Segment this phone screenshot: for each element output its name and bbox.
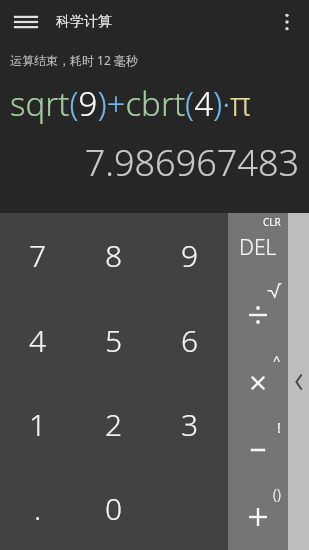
staticText: sqrt(9)+cbrt(4)·π bbox=[10, 81, 299, 126]
button[interactable]: . bbox=[0, 466, 76, 550]
staticText: 6 bbox=[181, 320, 199, 361]
staticText: 3 bbox=[181, 404, 199, 445]
button[interactable]: 1 bbox=[0, 382, 76, 466]
staticText: 4 bbox=[29, 320, 47, 361]
staticText: 0 bbox=[105, 488, 123, 529]
staticText: 2 bbox=[105, 404, 123, 445]
button[interactable]: 2 bbox=[76, 382, 152, 466]
button[interactable]: Subtract bbox=[228, 416, 288, 483]
button[interactable]: 3 bbox=[152, 382, 228, 466]
staticText: 8 bbox=[105, 235, 123, 276]
staticText: 1 bbox=[29, 404, 47, 445]
button[interactable]: 0 bbox=[76, 466, 152, 550]
button[interactable]: 5 bbox=[76, 298, 152, 382]
staticText: 科学计算 bbox=[56, 13, 112, 31]
staticText: CLR bbox=[263, 215, 281, 229]
staticText: . bbox=[34, 488, 42, 529]
staticText: ^ bbox=[273, 351, 281, 369]
button[interactable]: 7 bbox=[0, 213, 76, 298]
staticText: 9 bbox=[181, 235, 199, 276]
button[interactable]: Divide bbox=[228, 281, 288, 349]
button[interactable]: Multiply bbox=[228, 349, 288, 416]
button[interactable]: Menu bbox=[8, 4, 44, 40]
button[interactable]: Delete, long press to clear bbox=[228, 213, 288, 281]
button[interactable]: More options bbox=[269, 4, 305, 40]
staticText: () bbox=[273, 485, 281, 504]
button[interactable]: 6 bbox=[152, 298, 228, 382]
staticText: 运算结束，耗时 12 毫秒 bbox=[10, 52, 138, 68]
button[interactable]: 9 bbox=[152, 213, 228, 298]
staticText: 5 bbox=[105, 320, 123, 361]
button[interactable]: 8 bbox=[76, 213, 152, 298]
staticText: 7.986967483 bbox=[0, 138, 299, 187]
staticText: ! bbox=[277, 418, 281, 437]
button[interactable]: 4 bbox=[0, 298, 76, 382]
staticText: 7 bbox=[29, 235, 47, 276]
button[interactable]: Open advanced pad bbox=[288, 213, 309, 550]
button[interactable]: Add bbox=[228, 483, 288, 550]
staticText: DEL bbox=[239, 233, 277, 262]
